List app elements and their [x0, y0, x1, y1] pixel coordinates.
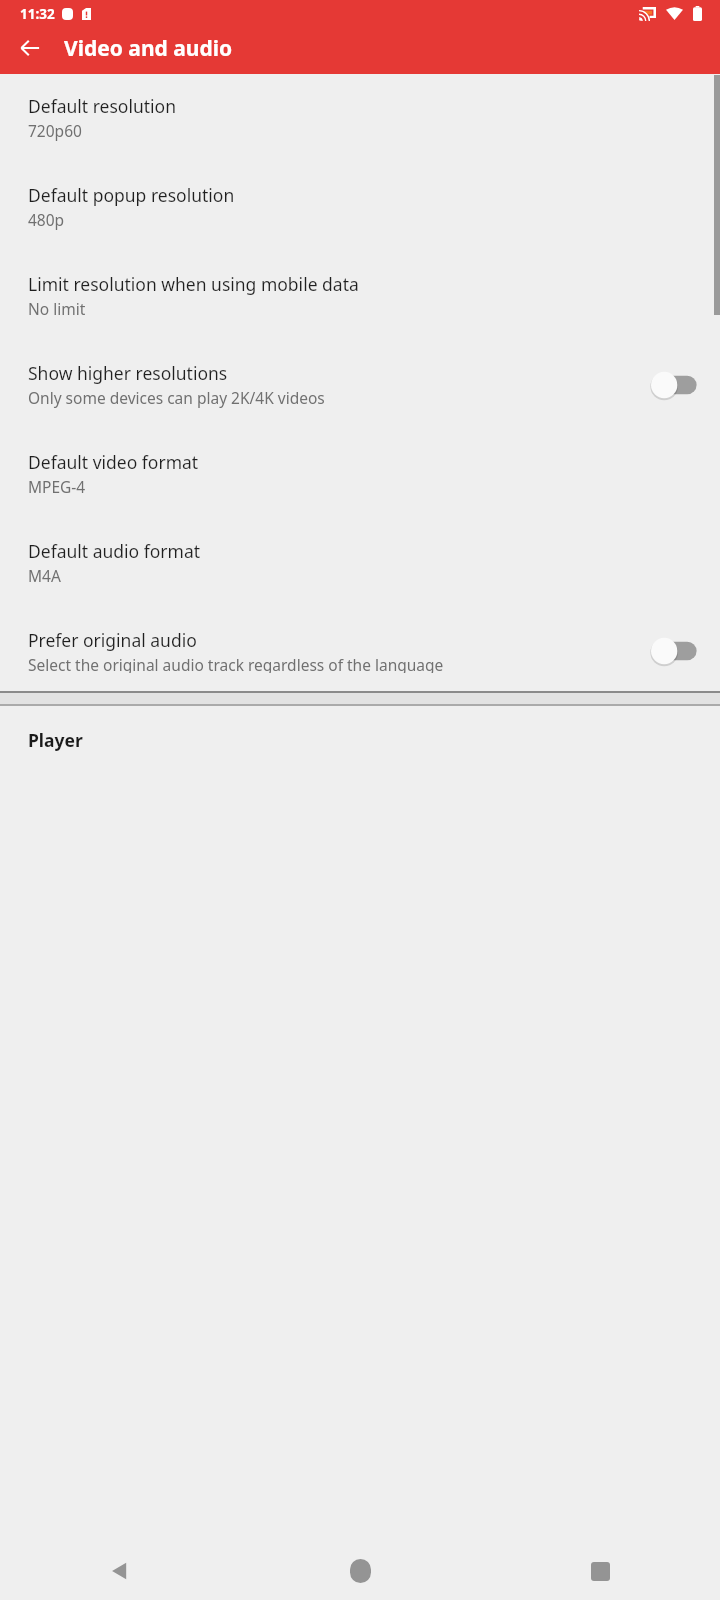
button[interactable]: Home [328, 1542, 392, 1600]
staticText: MPEG-4 [28, 476, 86, 497]
staticText: Prefer original audio [28, 628, 197, 652]
staticText: Select the original audio track regardle… [28, 654, 444, 673]
button[interactable]: Default audio format [0, 519, 720, 608]
staticText: Default video format [28, 450, 199, 474]
button[interactable]: Back [88, 1542, 152, 1600]
button[interactable]: Default popup resolution [0, 163, 720, 252]
staticText: Only some devices can play 2K/4K videos [28, 387, 325, 408]
button[interactable]: Default video format [0, 430, 720, 519]
button[interactable]: Toggle [648, 636, 702, 666]
button[interactable]: Toggle [648, 370, 702, 400]
staticText: 480p [28, 209, 65, 230]
button[interactable]: Default resolution [0, 74, 720, 163]
button[interactable]: Back [8, 26, 52, 70]
staticText: 720p60 [28, 120, 82, 141]
staticText: Default resolution [28, 94, 176, 118]
staticText: Show higher resolutions [28, 361, 228, 385]
staticText: Default popup resolution [28, 183, 235, 207]
button[interactable]: Limit resolution when using mobile data [0, 252, 720, 341]
staticText: Default audio format [28, 539, 201, 563]
button[interactable]: Show higher resolutions [0, 341, 720, 430]
button[interactable]: Prefer original audio [0, 608, 720, 691]
staticText: No limit [28, 298, 86, 319]
staticText: Video and audio [64, 34, 233, 63]
staticText: Player [28, 728, 83, 752]
staticText: M4A [28, 565, 61, 586]
staticText: Limit resolution when using mobile data [28, 272, 359, 296]
button[interactable]: Recent apps [568, 1542, 632, 1600]
staticText: 11:32 [20, 5, 55, 23]
